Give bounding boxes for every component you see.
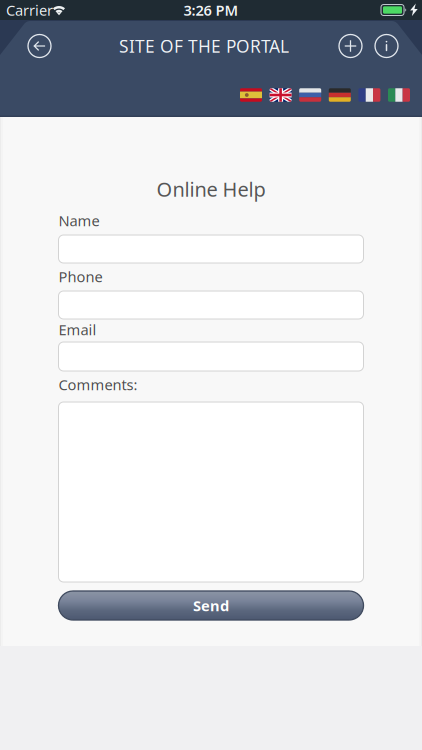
- staticText: Send: [193, 596, 229, 615]
- button[interactable]: Spanish: [240, 88, 262, 102]
- button[interactable]: English: [270, 88, 292, 102]
- button[interactable]: Info: [371, 31, 401, 61]
- button[interactable]: Back: [24, 31, 54, 61]
- staticText: SITE OF THE PORTAL: [119, 34, 289, 57]
- button[interactable]: French: [358, 88, 380, 102]
- staticText: Name: [58, 211, 99, 230]
- button[interactable]: Send: [58, 591, 363, 620]
- staticText: Email: [58, 320, 96, 339]
- staticText: Online Help: [156, 176, 265, 202]
- button[interactable]: Italian: [388, 88, 410, 102]
- button[interactable]: Russian: [299, 88, 321, 102]
- button[interactable]: Add: [335, 31, 365, 61]
- staticText: 3:26 PM: [183, 0, 238, 20]
- staticText: Comments:: [58, 375, 137, 394]
- staticText: Phone: [58, 267, 102, 286]
- staticText: Carrier: [6, 0, 53, 20]
- button[interactable]: German: [329, 88, 351, 102]
